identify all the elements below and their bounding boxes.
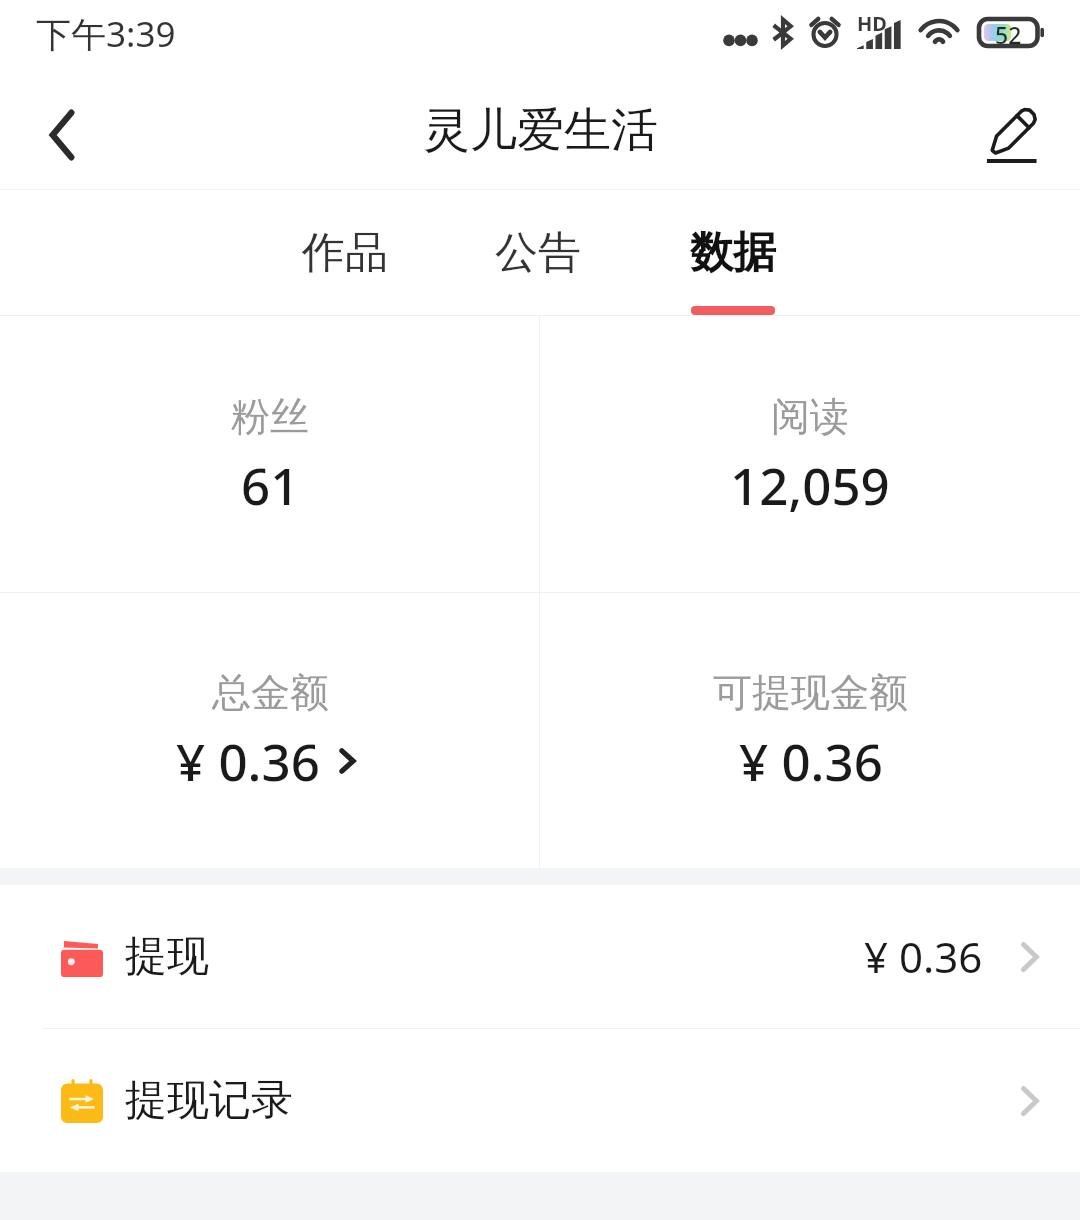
button[interactable]: 作品 <box>250 190 440 315</box>
staticText: 粉丝 <box>231 392 309 441</box>
staticText: 总金额 <box>212 668 329 717</box>
staticText: 作品 <box>302 226 388 280</box>
staticText: 下午3:39 <box>36 10 176 58</box>
staticText: HD <box>857 10 887 37</box>
staticText: 可提现金额 <box>713 668 908 717</box>
button[interactable]: Edit <box>966 83 1062 179</box>
button[interactable]: Back <box>14 83 110 179</box>
button[interactable]: 总金额 <box>0 593 539 868</box>
staticText: 阅读 <box>771 392 849 441</box>
staticText: 公告 <box>495 226 581 280</box>
button[interactable]: 提现 <box>0 885 1080 1028</box>
button[interactable]: 提现记录 <box>0 1029 1080 1172</box>
button[interactable]: 数据 <box>635 190 830 315</box>
button[interactable]: 阅读 <box>540 316 1080 592</box>
staticText: 52 <box>995 19 1022 46</box>
button[interactable]: 粉丝 <box>0 316 539 592</box>
staticText: 灵儿爱生活 <box>423 101 658 160</box>
staticText: 提现记录 <box>125 1074 293 1127</box>
staticText: 12,059 <box>730 450 890 519</box>
staticText: ¥ 0.36 <box>864 928 983 985</box>
staticText: ¥ 0.36 <box>176 726 320 795</box>
staticText: 提现 <box>125 930 209 983</box>
button[interactable]: 公告 <box>440 190 635 315</box>
button[interactable]: 可提现金额 <box>540 593 1080 868</box>
staticText: 61 <box>241 450 300 519</box>
staticText: 数据 <box>690 226 776 280</box>
staticText: ¥ 0.36 <box>739 726 883 795</box>
